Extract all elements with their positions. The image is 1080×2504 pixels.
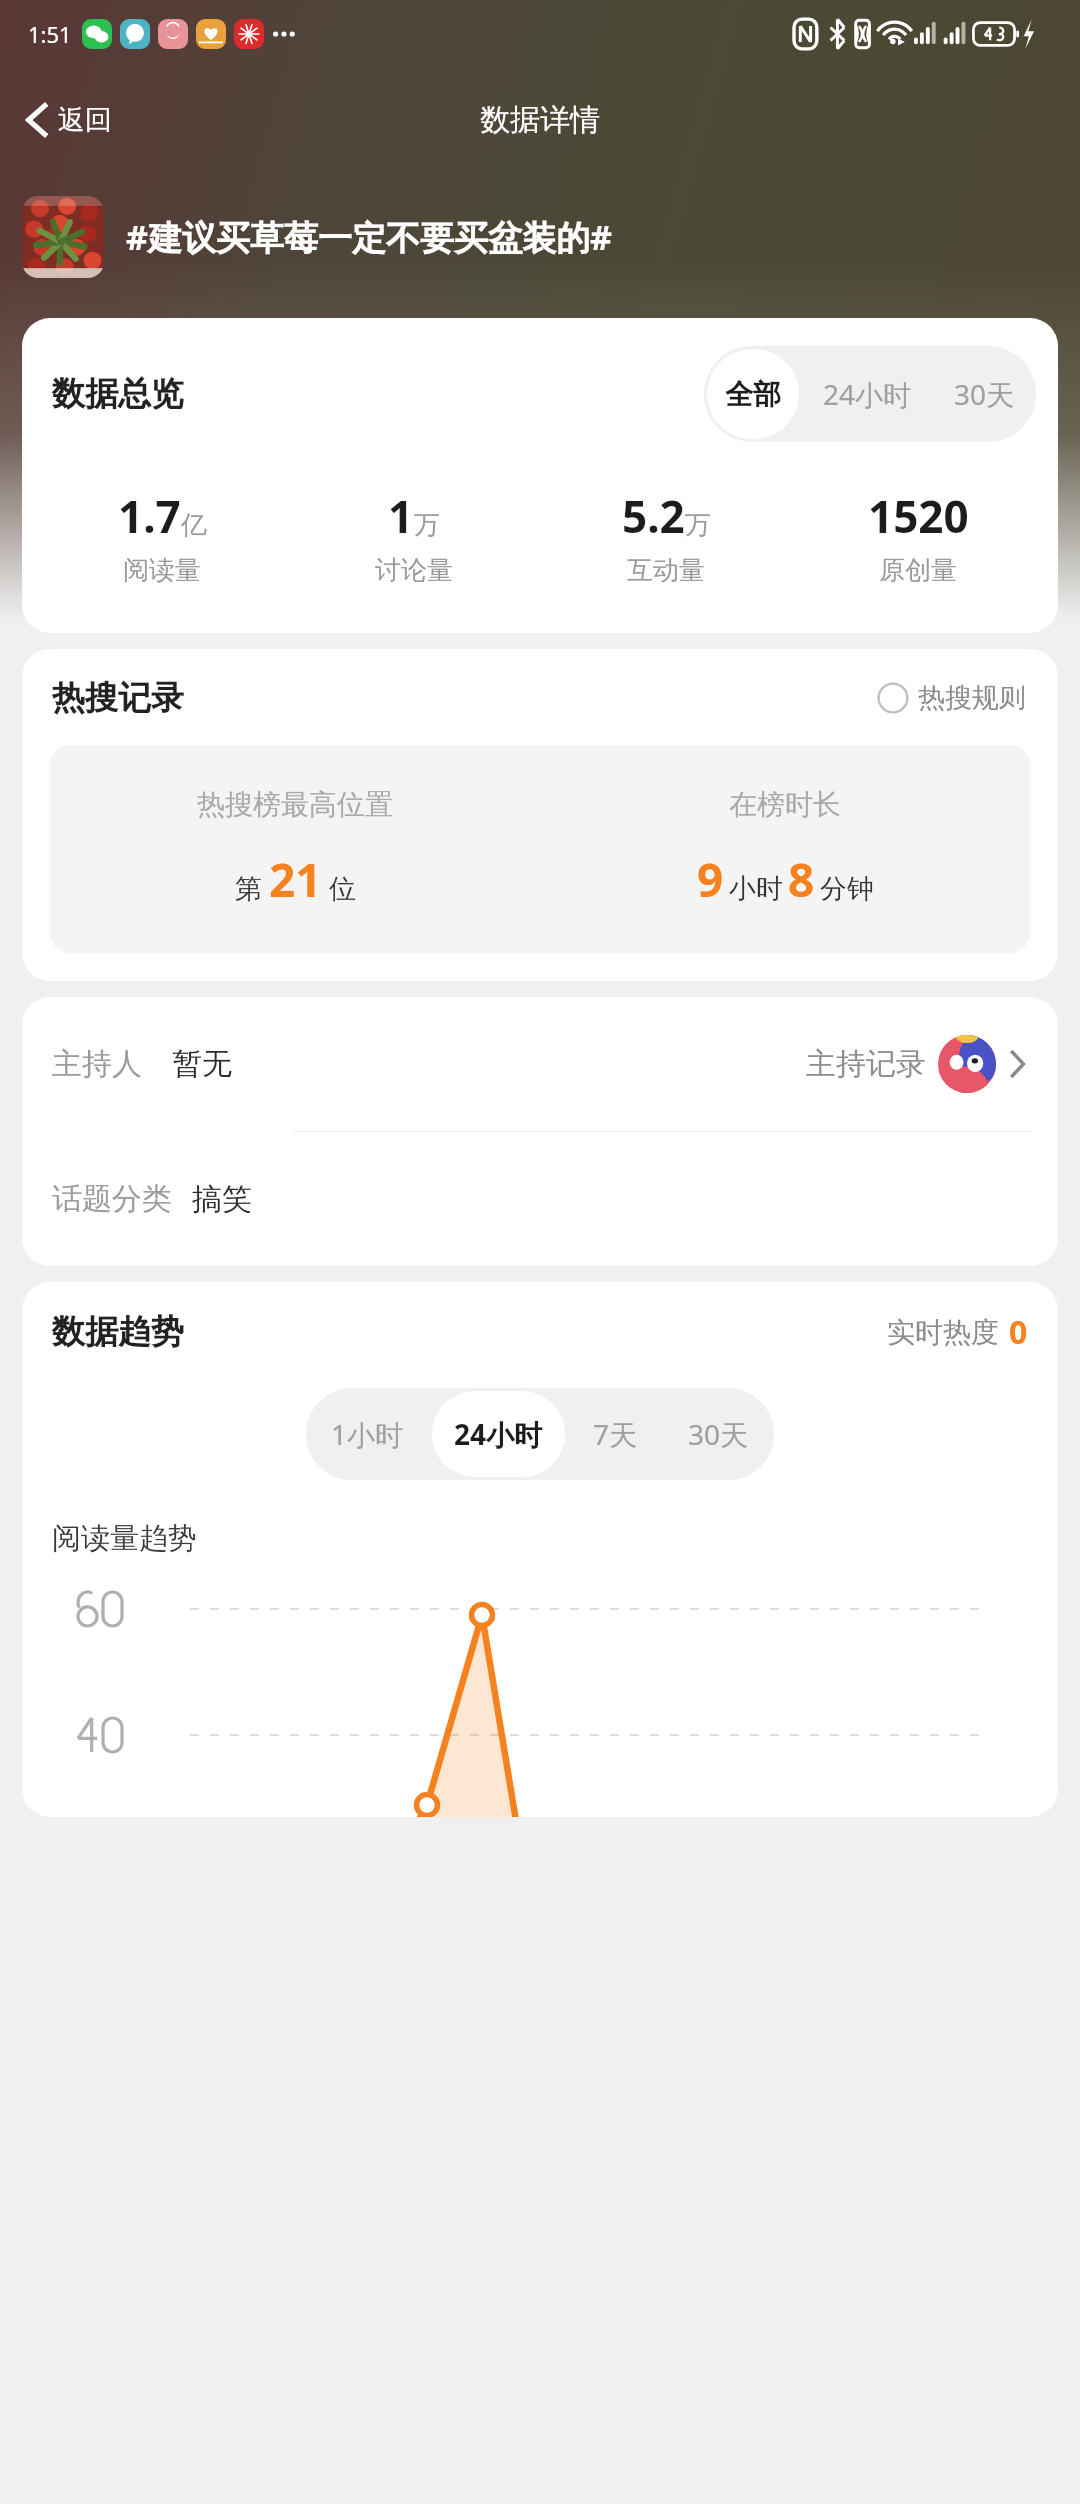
staticText: 话题分类 xyxy=(52,1180,172,1218)
staticText: 实时热度 xyxy=(887,1315,999,1350)
staticText: 热搜规则 xyxy=(918,681,1026,715)
staticText: 7天 xyxy=(593,1415,638,1453)
staticText: 30天 xyxy=(954,375,1015,413)
staticText: 1小时 xyxy=(331,1415,404,1453)
staticText: 9 xyxy=(697,848,724,911)
staticText: 全部 xyxy=(725,377,781,412)
staticText: 阅读量趋势 xyxy=(52,1520,197,1557)
staticText: 返回 xyxy=(58,103,112,137)
staticText: 数据总览 xyxy=(52,373,184,415)
button[interactable]: 实时热度 xyxy=(887,1310,1028,1354)
button[interactable]: 24小时 xyxy=(805,349,930,439)
staticText: 数据趋势 xyxy=(52,1311,184,1353)
staticText: 互动量 xyxy=(627,554,705,587)
staticText: 5.2 xyxy=(622,486,685,546)
staticText: 1:51 xyxy=(28,19,72,49)
staticText: 万 xyxy=(414,509,440,542)
staticText: 位 xyxy=(329,872,356,906)
staticText: 万 xyxy=(685,509,711,542)
staticText: 暂无 xyxy=(172,1045,232,1083)
staticText: 1520 xyxy=(868,486,969,546)
button[interactable]: 7天 xyxy=(571,1391,660,1477)
staticText: 24小时 xyxy=(454,1415,543,1453)
staticText: 21 xyxy=(269,848,322,911)
staticText: 8 xyxy=(788,848,815,911)
staticText: 主持记录 xyxy=(806,1045,926,1083)
staticText: 分钟 xyxy=(820,872,874,906)
staticText: 1 xyxy=(388,486,414,546)
staticText: 24小时 xyxy=(823,375,912,413)
other: 热搜规则说明 xyxy=(877,682,909,714)
button[interactable]: 1小时 xyxy=(309,1391,426,1477)
staticText: 搞笑 xyxy=(192,1180,252,1218)
staticText: 主持人 xyxy=(52,1045,142,1083)
staticText: 在榜时长 xyxy=(729,787,841,822)
staticText: 讨论量 xyxy=(375,554,453,587)
staticText: 0 xyxy=(1009,1310,1028,1354)
button[interactable]: 主持记录 xyxy=(802,1031,1030,1097)
button[interactable]: 24小时 xyxy=(432,1391,565,1477)
staticText: 数据详情 xyxy=(480,101,600,139)
staticText: 亿 xyxy=(181,509,207,542)
button[interactable]: 返回 xyxy=(0,94,128,146)
staticText: 热搜记录 xyxy=(52,677,184,719)
button[interactable]: 热搜规则说明 xyxy=(873,677,1030,719)
staticText: 1.7 xyxy=(118,486,181,546)
staticText: 30天 xyxy=(688,1415,749,1453)
staticText: 第 xyxy=(235,872,262,906)
staticText: 小时 xyxy=(729,872,783,906)
button[interactable]: 30天 xyxy=(666,1391,771,1477)
staticText: 热搜榜最高位置 xyxy=(197,787,393,822)
staticText: 原创量 xyxy=(879,554,957,587)
staticText: #建议买草莓一定不要买盆装的# xyxy=(126,214,612,260)
button[interactable]: 30天 xyxy=(936,349,1033,439)
staticText: 阅读量 xyxy=(123,554,201,587)
button[interactable]: 全部 xyxy=(707,349,799,439)
